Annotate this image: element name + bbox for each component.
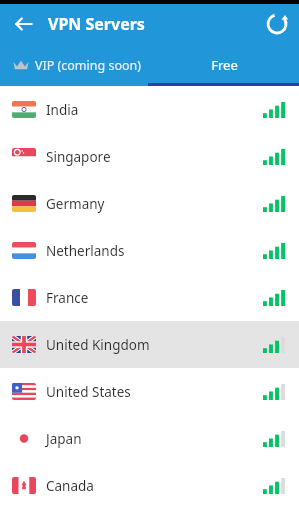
button[interactable]: VIP (coming soon) <box>0 44 149 86</box>
staticText: India <box>46 101 79 119</box>
staticText: United States <box>46 383 131 401</box>
staticText: Canada <box>46 477 94 495</box>
staticText: Singapore <box>46 148 111 166</box>
staticText: Japan <box>46 430 82 448</box>
staticText: France <box>46 289 89 307</box>
button[interactable]: Germany <box>0 180 299 227</box>
button[interactable]: Netherlands <box>0 227 299 274</box>
button[interactable]: France <box>0 274 299 321</box>
button[interactable]: Japan <box>0 415 299 462</box>
button[interactable]: United Kingdom <box>0 321 299 368</box>
staticText: Netherlands <box>46 242 125 260</box>
staticText: VPN Servers <box>48 13 145 35</box>
button[interactable]: Back <box>8 8 40 40</box>
staticText: United Kingdom <box>46 336 150 354</box>
button[interactable]: Free <box>149 44 299 86</box>
staticText: Germany <box>46 195 105 213</box>
staticText: VIP (coming soon) <box>35 57 142 74</box>
button[interactable]: Refresh <box>262 9 292 39</box>
button[interactable]: India <box>0 86 299 133</box>
button[interactable]: Singapore <box>0 133 299 180</box>
button[interactable]: Canada <box>0 462 299 509</box>
staticText: Free <box>211 56 238 74</box>
button[interactable]: United States <box>0 368 299 415</box>
